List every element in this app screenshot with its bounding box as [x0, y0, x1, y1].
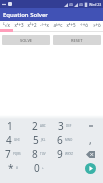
staticText: ⁶√x	[3, 22, 10, 28]
button[interactable]: back	[78, 147, 103, 161]
staticText: 6	[57, 133, 63, 147]
button[interactable]: -÷+x	[38, 21, 51, 32]
staticText: MNO	[65, 138, 73, 142]
button[interactable]: 0	[26, 161, 52, 175]
staticText: ABC	[40, 124, 46, 128]
button[interactable]: x⁴+5	[64, 21, 77, 32]
button[interactable]: comma	[78, 133, 103, 147]
button[interactable]: x³+2	[25, 21, 38, 32]
button[interactable]: SOLVE	[2, 35, 50, 45]
button[interactable]: 6	[52, 133, 78, 147]
staticText: PQRS	[13, 152, 21, 156]
staticText: GHI	[14, 138, 20, 142]
staticText: #	[16, 166, 18, 170]
staticText: 1	[7, 119, 13, 133]
staticText: 2	[32, 119, 38, 133]
staticText: »+ö	[93, 22, 101, 28]
button[interactable]: *	[0, 161, 26, 175]
button[interactable]: ÷+ó	[77, 21, 90, 32]
button[interactable]: aᵇ+c	[51, 21, 64, 32]
staticText: 4	[6, 133, 12, 147]
staticText: JKL	[41, 138, 46, 142]
button[interactable]: 1	[0, 119, 26, 133]
button[interactable]: x⁴+3	[12, 21, 25, 32]
button[interactable]: 2	[26, 119, 52, 133]
staticText: TUV	[40, 152, 46, 156]
staticText: 4G	[69, 3, 73, 7]
button[interactable]: dash	[78, 119, 103, 133]
button[interactable]: 7	[0, 147, 26, 161]
staticText: SOLVE	[20, 38, 33, 43]
staticText: 8	[32, 147, 38, 161]
staticText: 7	[5, 147, 11, 161]
staticText: -÷+x	[40, 22, 49, 28]
staticText: 0	[34, 161, 40, 175]
staticText: aᵇ+c	[53, 22, 63, 28]
staticText: RESET	[71, 38, 83, 43]
button[interactable]: 5	[26, 133, 52, 147]
button[interactable]: 3	[52, 119, 78, 133]
staticText: 5	[33, 133, 39, 147]
staticText: 3	[58, 119, 64, 133]
staticText: 9	[57, 147, 63, 161]
staticText: ,	[89, 133, 92, 147]
staticText: x⁴+5	[66, 22, 76, 28]
staticText: ÷+ó	[80, 22, 88, 28]
staticText: *	[8, 161, 14, 175]
staticText: Equation Solver	[3, 11, 48, 19]
button[interactable]: RESET	[53, 35, 101, 45]
staticText: 4G	[79, 3, 83, 7]
button[interactable]: ⁶√x	[0, 21, 12, 32]
staticText: +	[42, 166, 44, 170]
staticText: x³+2	[27, 22, 37, 28]
button[interactable]: 9	[52, 147, 78, 161]
button[interactable]: »+ö	[90, 21, 103, 32]
staticText: WXYZ	[65, 152, 73, 156]
staticText: DEF	[66, 124, 72, 128]
button[interactable]: go	[78, 161, 103, 175]
button[interactable]: 8	[26, 147, 52, 161]
staticText: x⁴+3	[14, 22, 24, 28]
staticText: Wed 23	[89, 2, 102, 7]
button[interactable]: 4	[0, 133, 26, 147]
